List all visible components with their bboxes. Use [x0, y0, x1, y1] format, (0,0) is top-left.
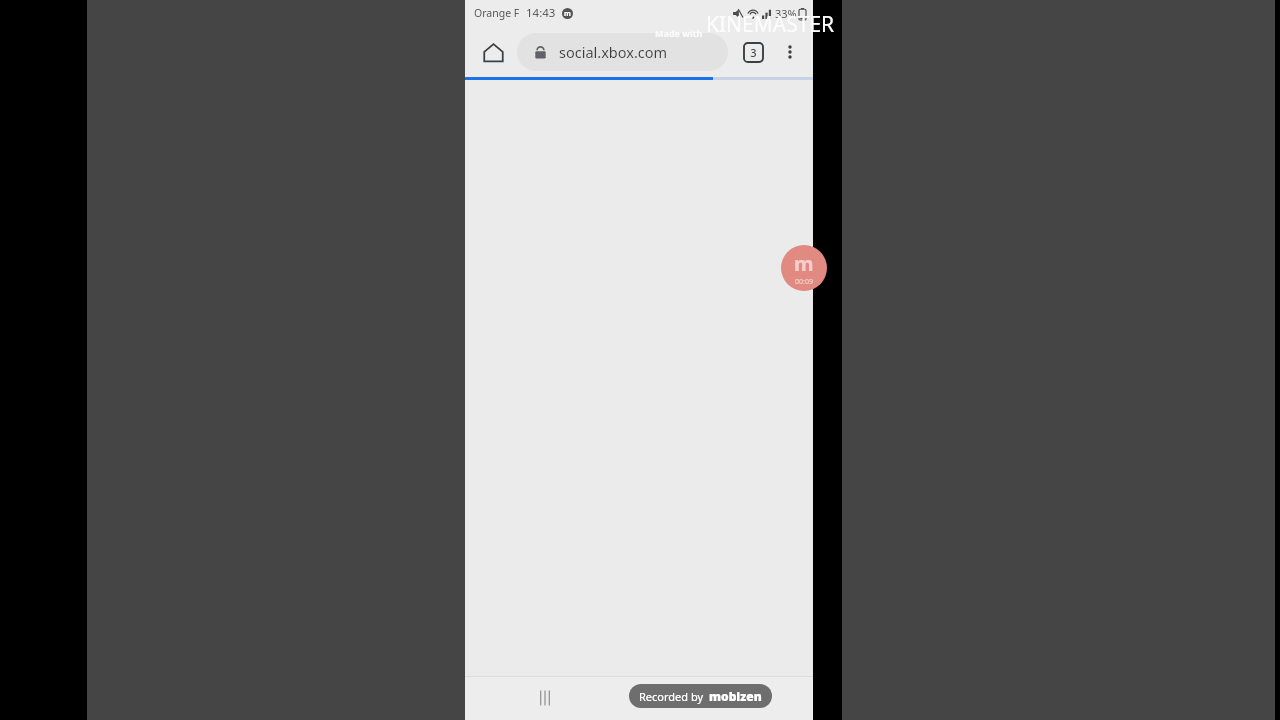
button[interactable]: social.xbox.com [517, 33, 728, 71]
button[interactable]: Home [474, 33, 512, 71]
button[interactable]: Tabs, 3 open [736, 35, 770, 69]
staticText: 3 [750, 45, 757, 60]
staticText: m [794, 250, 814, 277]
staticText: 00:09 [795, 277, 813, 287]
staticText: KINEMASTER [706, 10, 835, 39]
staticText: social.xbox.com [559, 42, 668, 62]
staticText: Made with [655, 27, 703, 39]
staticText: 33% [775, 6, 797, 21]
button[interactable]: Recent apps [525, 676, 565, 720]
button[interactable]: Mobizen recorder [781, 245, 827, 291]
staticText: 14:43 [526, 5, 556, 21]
staticText: Recorded by [639, 689, 704, 704]
staticText: mobizen [709, 688, 762, 704]
staticText: m [564, 9, 571, 19]
staticText: Orange F [474, 6, 520, 20]
button[interactable]: More options [773, 35, 807, 69]
